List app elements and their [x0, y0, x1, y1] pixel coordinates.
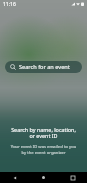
- button[interactable]: Recent apps: [58, 172, 87, 183]
- staticText: 11:16: [3, 1, 16, 8]
- staticText: Search by name, location, or event ID: [9, 126, 78, 140]
- button[interactable]: Back: [0, 172, 29, 183]
- button[interactable]: Home: [29, 172, 58, 183]
- staticText: Search for an event: [19, 63, 70, 71]
- staticText: Your event ID was emailed to you by the …: [9, 144, 78, 156]
- button[interactable]: Search for an event: [5, 61, 82, 73]
